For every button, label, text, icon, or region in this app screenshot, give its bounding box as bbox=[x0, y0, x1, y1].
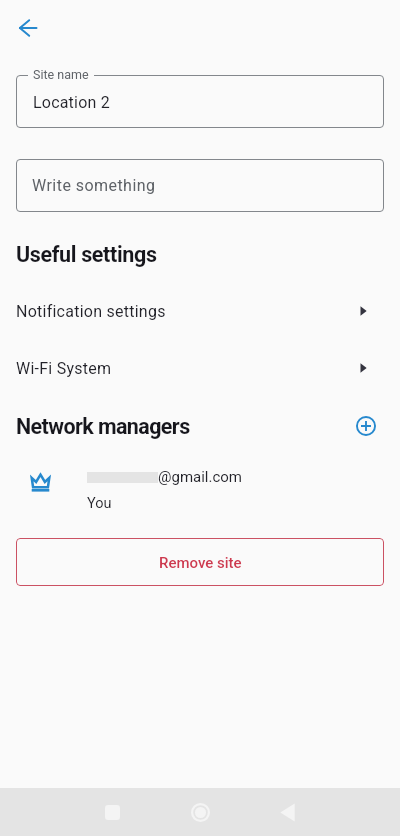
staticText: Wi-Fi System bbox=[16, 359, 112, 378]
staticText: Location 2 bbox=[33, 93, 110, 112]
button[interactable]: Home bbox=[176, 788, 224, 836]
button[interactable]: Location 2 bbox=[16, 75, 384, 128]
button[interactable]: Write something bbox=[16, 159, 384, 212]
button[interactable]: @gmail.com bbox=[0, 464, 400, 516]
button[interactable]: Notification settings bbox=[0, 283, 400, 339]
button[interactable]: Add network manager bbox=[350, 410, 382, 442]
staticText: Remove site bbox=[159, 554, 242, 572]
staticText: You bbox=[87, 495, 112, 512]
staticText: Network managers bbox=[16, 414, 190, 439]
button[interactable]: Back bbox=[263, 788, 311, 836]
button[interactable]: Back bbox=[7, 7, 49, 49]
button[interactable]: Recent apps bbox=[88, 788, 136, 836]
staticText: Notification settings bbox=[16, 302, 166, 321]
button[interactable]: Remove site bbox=[16, 538, 384, 586]
staticText: Write something bbox=[32, 176, 156, 195]
staticText: Useful settings bbox=[16, 242, 157, 267]
button[interactable]: Wi-Fi System bbox=[0, 340, 400, 396]
staticText: Site name bbox=[33, 67, 89, 82]
staticText: @gmail.com bbox=[158, 468, 243, 486]
